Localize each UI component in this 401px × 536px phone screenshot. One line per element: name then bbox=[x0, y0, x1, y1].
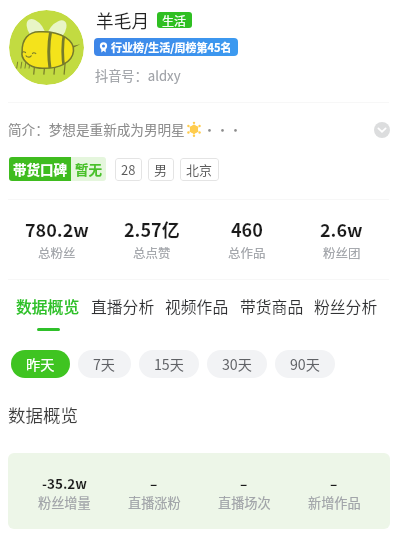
staticText: 90天 bbox=[290, 354, 320, 375]
staticText: 直播分析 bbox=[91, 295, 155, 318]
staticText: 30天 bbox=[222, 354, 252, 375]
staticText: 15天 bbox=[154, 354, 184, 375]
staticText: 总点赞 bbox=[133, 243, 171, 261]
staticText: 数据概览 bbox=[16, 295, 80, 318]
button[interactable]: 行业榜/生活/周榜第45名 bbox=[94, 38, 238, 56]
staticText: 男 bbox=[154, 160, 168, 179]
staticText: 行业榜/生活/周榜第45名 bbox=[111, 39, 232, 55]
staticText: 2.6w bbox=[320, 216, 363, 242]
staticText: 7天 bbox=[93, 354, 116, 375]
staticText: – bbox=[330, 473, 338, 493]
button[interactable]: 展开简介 bbox=[374, 122, 390, 138]
button[interactable]: 直播分析 bbox=[91, 295, 155, 331]
staticText: 带货口碑 bbox=[13, 159, 67, 179]
button[interactable]: 昨天 bbox=[11, 350, 70, 378]
staticText: 2.57亿 bbox=[124, 216, 180, 242]
staticText: 抖音号：aldxy bbox=[95, 66, 181, 85]
staticText: 羊毛月 bbox=[96, 7, 150, 33]
staticText: 总作品 bbox=[228, 243, 266, 261]
staticText: 28 bbox=[121, 160, 136, 179]
staticText: 视频作品 bbox=[165, 295, 229, 318]
staticText: ··· bbox=[203, 120, 243, 139]
button[interactable]: 视频作品 bbox=[165, 295, 229, 331]
staticText: 粉丝分析 bbox=[314, 295, 378, 318]
button[interactable]: 30天 bbox=[207, 350, 267, 378]
staticText: – bbox=[240, 473, 248, 493]
staticText: 粉丝团 bbox=[323, 243, 361, 261]
staticText: 总粉丝 bbox=[38, 243, 76, 261]
button[interactable]: 带货商品 bbox=[240, 295, 304, 331]
staticText: 直播涨粉 bbox=[128, 493, 181, 512]
button[interactable]: 7天 bbox=[78, 350, 131, 378]
staticText: 直播场次 bbox=[218, 493, 271, 512]
button[interactable]: 15天 bbox=[139, 350, 199, 378]
button[interactable]: 头像 bbox=[9, 10, 84, 85]
staticText: 简介：梦想是重新成为男明星 bbox=[8, 119, 185, 139]
staticText: 暂无 bbox=[75, 159, 102, 179]
staticText: 数据概览 bbox=[8, 402, 78, 427]
staticText: 460 bbox=[231, 216, 263, 242]
staticText: 生活 bbox=[162, 12, 187, 28]
staticText: 新增作品 bbox=[308, 493, 361, 512]
staticText: 粉丝增量 bbox=[38, 493, 91, 512]
button[interactable]: 90天 bbox=[275, 350, 335, 378]
staticText: 780.2w bbox=[25, 216, 89, 242]
staticText: 带货商品 bbox=[240, 295, 304, 318]
staticText: 北京 bbox=[186, 160, 213, 179]
button[interactable]: 粉丝分析 bbox=[314, 295, 378, 331]
staticText: – bbox=[150, 473, 158, 493]
button[interactable]: 数据概览 bbox=[16, 295, 80, 331]
staticText: 昨天 bbox=[26, 354, 55, 375]
staticText: -35.2w bbox=[42, 473, 87, 493]
